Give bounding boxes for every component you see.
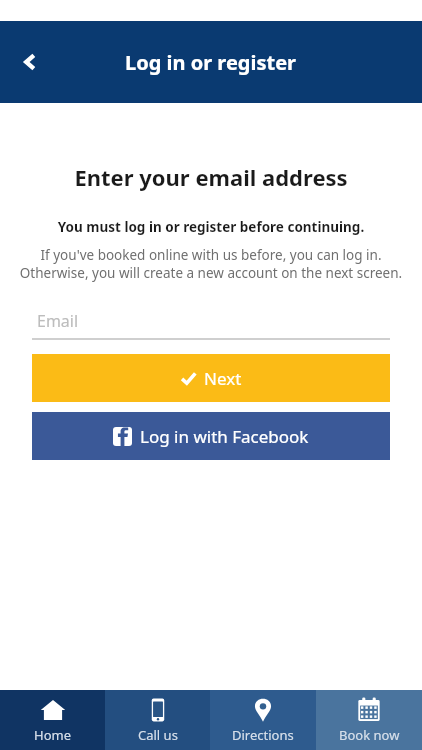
button[interactable]: Next <box>32 354 390 402</box>
button[interactable]: Back <box>6 38 54 86</box>
button[interactable]: Home <box>0 690 105 750</box>
button[interactable]: Directions <box>210 690 316 750</box>
staticText: Log in with Facebook <box>140 425 309 448</box>
staticText: Book now <box>339 726 400 744</box>
staticText: Call us <box>138 726 178 744</box>
staticText: Enter your email address <box>0 162 422 192</box>
staticText: You must log in or register before conti… <box>0 218 422 236</box>
staticText: If you've booked online with us before, … <box>16 246 406 282</box>
staticText: Log in or register <box>125 49 297 76</box>
staticText: Email <box>37 310 79 332</box>
button[interactable]: Log in with Facebook <box>32 412 390 460</box>
button[interactable]: Call us <box>105 690 210 750</box>
staticText: Directions <box>232 726 294 744</box>
staticText: Home <box>34 726 71 744</box>
button[interactable]: Book now <box>316 690 422 750</box>
staticText: Next <box>204 367 242 390</box>
button[interactable]: Email <box>32 304 390 340</box>
